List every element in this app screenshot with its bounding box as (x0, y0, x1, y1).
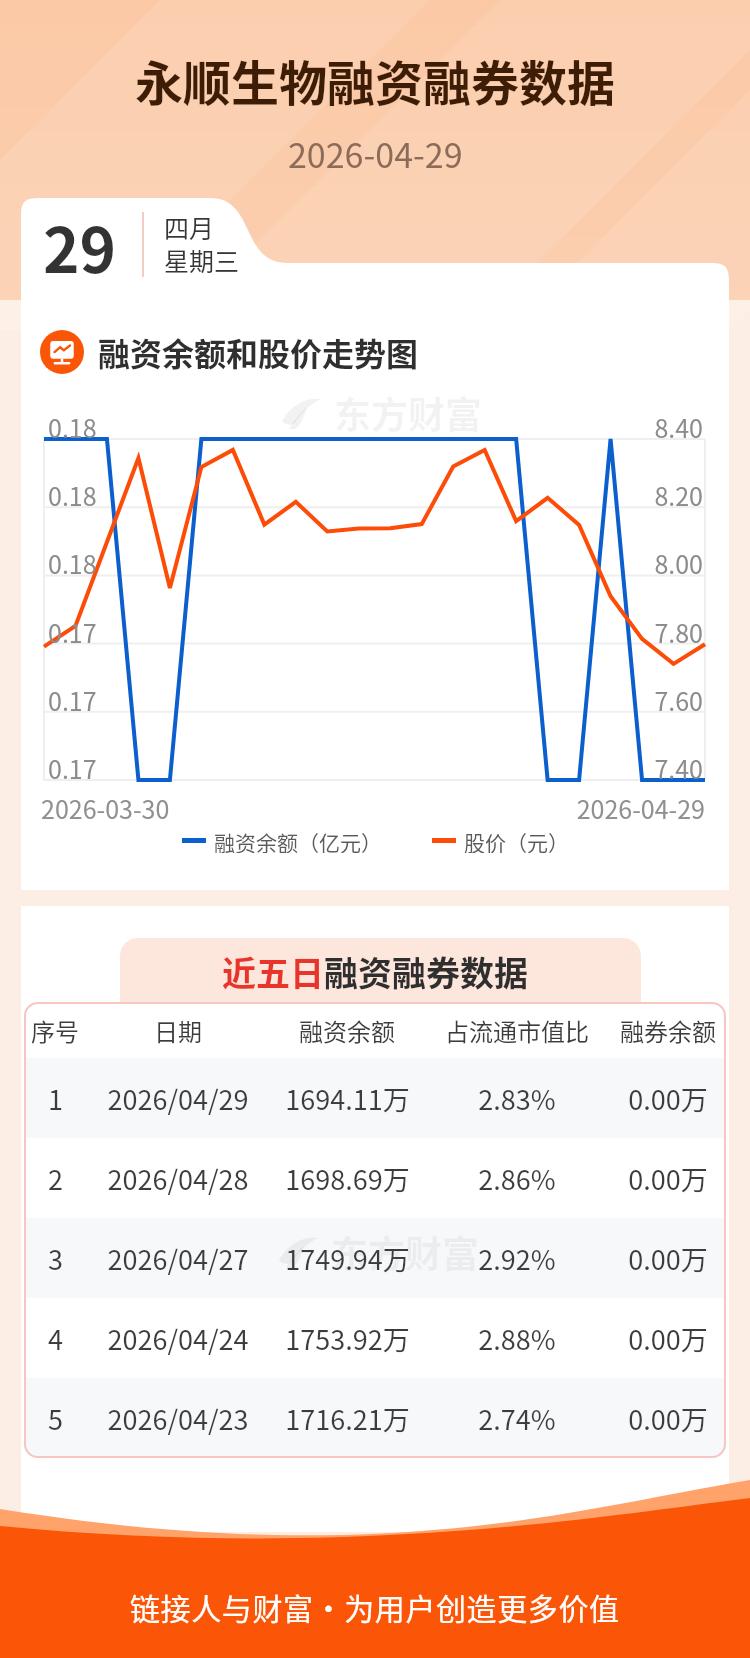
staticText: 占流通市值比 (445, 1013, 589, 1048)
staticText: 7.40 (613, 750, 703, 786)
staticText: 0.00万 (628, 1399, 708, 1438)
staticText: 7.80 (613, 614, 703, 650)
staticText: 0.18 (48, 545, 97, 581)
staticText: 0.00万 (628, 1239, 708, 1278)
staticText: 0.00万 (628, 1319, 708, 1358)
staticText: 2026/04/27 (107, 1239, 249, 1278)
staticText: 2026/04/23 (107, 1399, 249, 1438)
staticText: 日期 (154, 1013, 202, 1048)
staticText: 4 (48, 1319, 63, 1358)
staticText: 1 (48, 1079, 63, 1118)
staticText: 29 (43, 201, 117, 291)
staticText: 0.17 (48, 750, 97, 786)
staticText: 永顺生物融资融券数据 (135, 45, 616, 115)
staticText: 2.88% (478, 1319, 556, 1358)
other: 走势图 (40, 330, 84, 374)
staticText: 股价（元） (464, 827, 569, 853)
staticText: 2026/04/28 (107, 1159, 249, 1198)
staticText: 8.20 (613, 477, 703, 513)
button[interactable]: 东方财富 (24, 1218, 726, 1298)
staticText: 1698.69万 (285, 1159, 410, 1198)
staticText: 0.18 (48, 477, 97, 513)
staticText: 2.92% (478, 1239, 556, 1278)
staticText: 融资余额和股价走势图 (98, 329, 419, 375)
staticText: 融券余额 (620, 1013, 716, 1048)
staticText: 星期三 (164, 242, 240, 278)
staticText: 1716.21万 (285, 1399, 410, 1438)
button[interactable]: 2 (24, 1138, 726, 1218)
staticText: 近五日融资融券数据 (222, 947, 528, 996)
staticText: 0.17 (48, 614, 97, 650)
staticText: 2026/04/24 (107, 1319, 249, 1358)
staticText: 序号 (31, 1013, 79, 1048)
staticText: 四月 (164, 209, 215, 245)
staticText: 东方财富 (331, 1225, 479, 1279)
staticText: 1753.92万 (285, 1319, 410, 1358)
staticText: 2.74% (478, 1399, 556, 1438)
button[interactable]: 1 (24, 1058, 726, 1138)
staticText: 3 (48, 1239, 63, 1278)
staticText: 0.00万 (628, 1079, 708, 1118)
staticText: 2026-04-29 (500, 790, 705, 826)
staticText: 融资余额（亿元） (214, 827, 382, 853)
button[interactable]: 4 (24, 1298, 726, 1378)
staticText: 2026-03-30 (41, 790, 170, 826)
staticText: 7.60 (613, 682, 703, 718)
staticText: 8.40 (613, 409, 703, 445)
button[interactable]: 序号 (24, 1002, 726, 1058)
staticText: 2 (48, 1159, 63, 1198)
staticText: 2.86% (478, 1159, 556, 1198)
staticText: 0.18 (48, 409, 97, 445)
staticText: 0.17 (48, 682, 97, 718)
button[interactable]: 5 (24, 1378, 726, 1458)
staticText: 8.00 (613, 545, 703, 581)
staticText: 5 (48, 1399, 63, 1438)
staticText: 0.00万 (628, 1159, 708, 1198)
staticText: 1694.11万 (285, 1079, 410, 1118)
staticText: 2026-04-29 (288, 129, 463, 178)
staticText: 1749.94万 (285, 1239, 410, 1278)
staticText: 2026/04/29 (107, 1079, 249, 1118)
staticText: 链接人与财富·为用户创造更多价值 (130, 1585, 620, 1628)
staticText: 2.83% (478, 1079, 556, 1118)
staticText: 东方财富 (334, 386, 482, 440)
staticText: 融资余额 (299, 1013, 395, 1048)
